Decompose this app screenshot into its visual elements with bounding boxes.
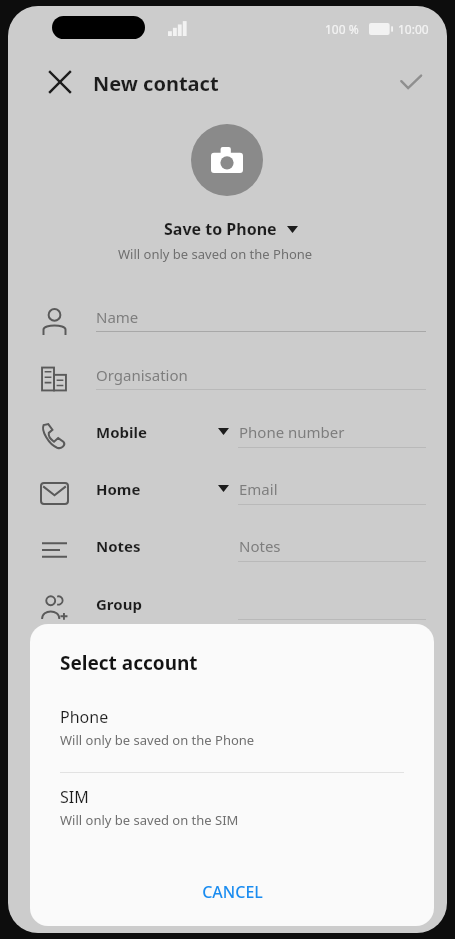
button[interactable]: SIM: [30, 782, 434, 844]
button[interactable]: [30, 296, 430, 346]
staticText: New contact: [93, 70, 219, 97]
staticText: Home: [96, 479, 141, 499]
button[interactable]: Save: [389, 60, 433, 104]
button[interactable]: [30, 411, 430, 461]
staticText: Will only be saved on the SIM: [60, 811, 239, 829]
button[interactable]: [30, 468, 430, 518]
button[interactable]: [30, 354, 430, 404]
staticText: Notes: [96, 536, 141, 556]
button[interactable]: Add photo: [191, 124, 263, 196]
staticText: CANCEL: [202, 881, 263, 903]
button[interactable]: Phone: [30, 702, 434, 764]
button[interactable]: CANCEL: [147, 870, 317, 914]
button[interactable]: [30, 525, 430, 575]
staticText: Notes: [239, 536, 281, 556]
staticText: Group: [96, 594, 142, 614]
button[interactable]: Save to Phone: [158, 215, 304, 243]
staticText: Email: [239, 479, 278, 499]
staticText: Organisation: [96, 365, 188, 385]
staticText: Select account: [60, 650, 198, 676]
staticText: 10:00: [398, 21, 429, 37]
staticText: Will only be saved on the Phone: [60, 731, 255, 749]
staticText: Mobile: [96, 422, 147, 442]
staticText: SIM: [60, 786, 89, 808]
staticText: 100 %: [325, 21, 359, 37]
button[interactable]: [30, 583, 430, 633]
button[interactable]: Close: [38, 60, 82, 104]
staticText: Save to Phone: [164, 218, 277, 240]
staticText: Phone number: [239, 422, 345, 442]
staticText: Phone: [60, 706, 109, 728]
staticText: Name: [96, 307, 139, 327]
staticText: Will only be saved on the Phone: [118, 245, 313, 263]
